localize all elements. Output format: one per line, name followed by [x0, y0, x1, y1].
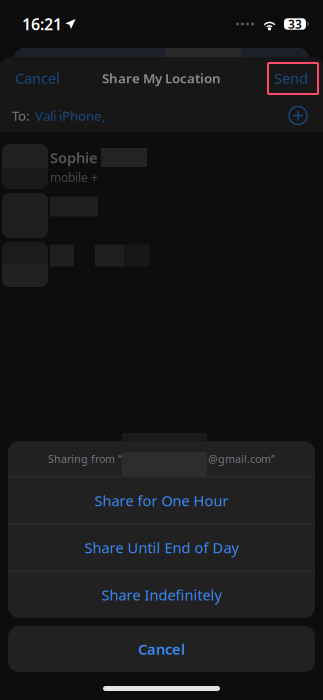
- staticText: Cancel: [15, 68, 60, 88]
- staticText: mobile +: [50, 169, 98, 185]
- staticText: Sharing from “: [48, 452, 122, 466]
- button[interactable]: Cancel: [8, 626, 315, 672]
- staticText: Share Indefinitely: [101, 585, 221, 604]
- button[interactable]: Share Indefinitely: [8, 571, 315, 618]
- button[interactable]: Send: [263, 57, 323, 99]
- button[interactable]: [0, 191, 323, 240]
- staticText: Share My Location: [102, 69, 221, 87]
- button[interactable]: Share for One Hour: [8, 477, 315, 524]
- staticText: 16:21: [22, 13, 62, 35]
- button[interactable]: Share Until End of Day: [8, 524, 315, 571]
- button[interactable]: Sophie: [0, 142, 323, 191]
- staticText: Sophie: [50, 148, 98, 167]
- staticText: Cancel: [138, 639, 185, 659]
- staticText: @gmail.com”: [208, 452, 275, 466]
- staticText: To:: [12, 107, 30, 124]
- staticText: Share Until End of Day: [84, 538, 238, 557]
- button[interactable]: Cancel: [0, 57, 71, 99]
- staticText: Send: [274, 68, 308, 88]
- staticText: Share for One Hour: [94, 491, 228, 510]
- staticText: 33: [288, 16, 302, 32]
- staticText: Vali iPhone,: [35, 107, 106, 124]
- button[interactable]: [0, 240, 323, 289]
- button[interactable]: Add contact: [283, 100, 313, 130]
